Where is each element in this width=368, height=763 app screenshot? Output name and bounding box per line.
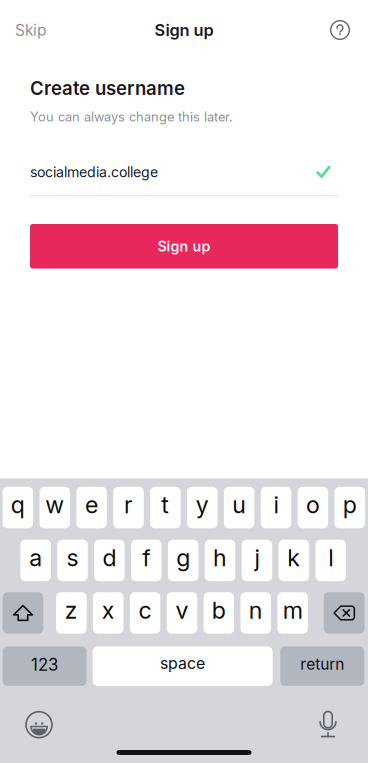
button[interactable]: z	[56, 592, 87, 634]
button[interactable]: Help	[318, 8, 362, 52]
button[interactable]: c	[130, 592, 160, 634]
button[interactable]: 123	[3, 646, 87, 686]
button[interactable]: h	[205, 540, 235, 581]
button[interactable]	[324, 592, 364, 634]
staticText: f	[142, 543, 150, 572]
staticText: h	[213, 543, 227, 572]
staticText: d	[102, 543, 116, 572]
staticText: p	[343, 491, 357, 519]
button[interactable]: q	[3, 487, 33, 528]
staticText: r	[124, 491, 133, 519]
button[interactable]: m	[277, 592, 308, 634]
staticText: You can always change this later.	[30, 109, 233, 124]
button[interactable]: k	[279, 540, 309, 581]
staticText: c	[139, 596, 152, 624]
staticText: k	[287, 543, 300, 572]
staticText: socialmedia.college	[30, 163, 158, 180]
staticText: u	[232, 491, 246, 519]
button[interactable]: w	[39, 487, 70, 528]
staticText: e	[85, 491, 98, 519]
staticText: a	[29, 543, 42, 572]
button[interactable]: j	[242, 540, 272, 581]
staticText: g	[176, 543, 190, 572]
button[interactable]: Dictation	[306, 702, 350, 746]
staticText: l	[328, 543, 333, 572]
staticText: x	[102, 596, 115, 624]
button[interactable]: b	[204, 592, 234, 634]
button[interactable]: x	[93, 592, 123, 634]
staticText: q	[11, 491, 25, 519]
button[interactable]: n	[240, 592, 271, 634]
staticText: v	[175, 596, 188, 624]
staticText: t	[161, 491, 169, 519]
button[interactable]: return	[280, 646, 364, 686]
button[interactable]: e	[76, 487, 107, 528]
staticText: Sign up	[157, 238, 210, 255]
button[interactable]: Sign up	[30, 224, 338, 268]
staticText: w	[45, 491, 64, 519]
button[interactable]: y	[187, 487, 217, 528]
button[interactable]: s	[57, 540, 88, 581]
staticText: Create username	[30, 77, 185, 99]
staticText: b	[212, 596, 226, 624]
button[interactable]: i	[261, 487, 291, 528]
button[interactable]: p	[334, 487, 365, 528]
staticText: z	[65, 596, 78, 624]
staticText: o	[306, 491, 320, 519]
button[interactable]: u	[224, 487, 254, 528]
button[interactable]: Emoji keyboard	[17, 703, 61, 747]
button[interactable]: a	[20, 540, 51, 581]
staticText: space	[160, 654, 205, 673]
staticText: j	[254, 543, 259, 572]
button[interactable]: l	[315, 540, 346, 581]
button[interactable]: g	[168, 540, 198, 581]
staticText: Skip	[15, 21, 46, 39]
staticText: y	[196, 491, 209, 519]
button[interactable]	[3, 592, 43, 634]
button[interactable]: r	[113, 487, 144, 528]
button[interactable]: Skip	[0, 8, 75, 52]
button[interactable]: t	[150, 487, 181, 528]
button[interactable]: d	[94, 540, 125, 581]
button[interactable]: f	[131, 540, 161, 581]
button[interactable]: o	[298, 487, 328, 528]
staticText: Sign up	[154, 20, 213, 40]
staticText: return	[300, 655, 344, 674]
staticText: i	[273, 491, 278, 519]
staticText: n	[249, 596, 263, 624]
staticText: m	[283, 596, 303, 624]
button[interactable]: v	[167, 592, 197, 634]
button[interactable]: space	[93, 646, 273, 686]
staticText: s	[66, 543, 78, 572]
staticText: 123	[31, 654, 58, 675]
